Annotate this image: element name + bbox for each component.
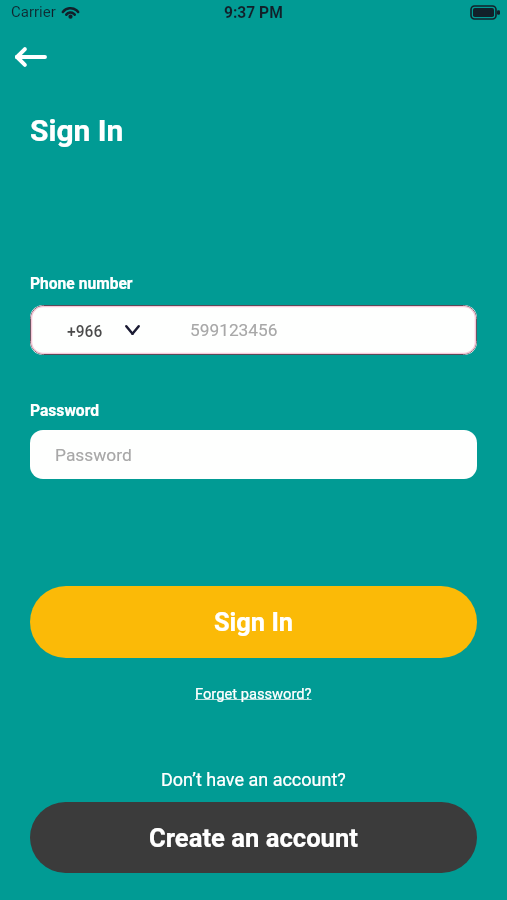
staticText: Phone number: [30, 275, 133, 293]
button[interactable]: Back: [7, 33, 55, 81]
button[interactable]: Create an account: [30, 802, 477, 873]
staticText: +966: [67, 323, 103, 341]
staticText: Create an account: [149, 823, 358, 853]
staticText: 599123456: [190, 320, 278, 340]
button[interactable]: Sign In: [30, 586, 477, 658]
staticText: Password: [30, 402, 100, 420]
staticText: Sign In: [30, 113, 124, 148]
staticText: Sign In: [214, 607, 294, 637]
button[interactable]: Phone number input: [160, 305, 477, 355]
button[interactable]: Forget password?: [191, 683, 316, 704]
staticText: Password: [55, 445, 132, 465]
staticText: Carrier: [11, 3, 56, 21]
button[interactable]: Select country code: [30, 305, 160, 355]
staticText: Don’t have an account?: [161, 769, 346, 790]
staticText: 9:37 PM: [224, 4, 283, 22]
button[interactable]: Password: [30, 430, 477, 479]
